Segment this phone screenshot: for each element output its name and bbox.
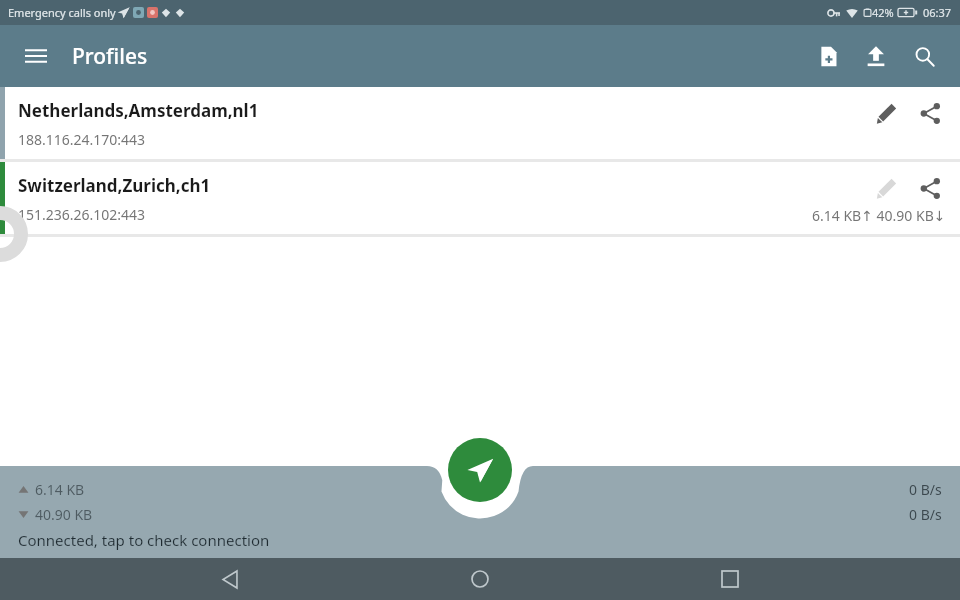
staticText: 0 B/s <box>909 480 942 499</box>
button[interactable]: Connected, tap to check connection <box>18 530 270 550</box>
staticText: 40.90 KB <box>35 505 93 524</box>
staticText: 06:37 <box>923 5 952 20</box>
button[interactable]: Import profile <box>852 32 900 80</box>
button[interactable]: Search <box>900 32 948 80</box>
button[interactable]: Share profile <box>908 166 952 210</box>
button[interactable]: Netherlands,Amsterdam,nl1 <box>0 87 960 159</box>
staticText: 0 B/s <box>909 505 942 524</box>
button[interactable]: Share profile <box>908 91 952 135</box>
staticText: Switzerland,Zurich,ch1 <box>18 174 211 197</box>
button[interactable]: Back <box>210 559 250 599</box>
button[interactable]: Open navigation menu <box>14 34 58 78</box>
button[interactable]: Switzerland,Zurich,ch1 <box>0 162 960 234</box>
staticText: 188.116.24.170:443 <box>18 130 146 149</box>
staticText: 6.14 KB↑ 40.90 KB↓ <box>812 206 946 225</box>
button[interactable]: Edit profile <box>864 91 908 135</box>
staticText: Profiles <box>72 42 148 71</box>
button[interactable]: Recent apps <box>710 559 750 599</box>
button[interactable]: Edit profile <box>864 166 908 210</box>
staticText: Emergency calls only <box>8 5 116 20</box>
staticText: 6.14 KB <box>35 480 85 499</box>
staticText: 42% <box>872 5 894 20</box>
button[interactable]: Home <box>460 559 500 599</box>
staticText: Netherlands,Amsterdam,nl1 <box>18 99 259 122</box>
staticText: 151.236.26.102:443 <box>18 205 146 224</box>
button[interactable]: New profile <box>804 32 852 80</box>
button[interactable]: Connect <box>448 438 512 502</box>
